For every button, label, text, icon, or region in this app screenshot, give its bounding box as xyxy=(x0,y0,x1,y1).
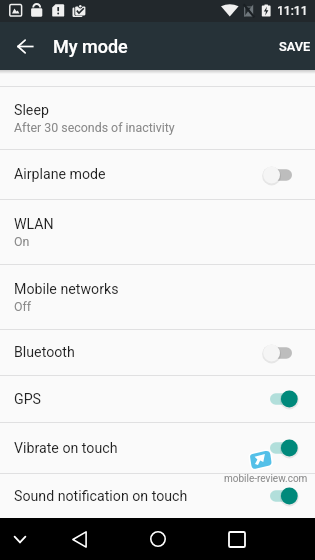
button[interactable]: GPS xyxy=(0,376,315,422)
button[interactable]: Recents xyxy=(223,525,251,553)
button[interactable]: Toggle on xyxy=(261,482,301,510)
button[interactable]: Hide keyboard xyxy=(6,525,34,553)
staticText: Airplane mode xyxy=(14,166,106,183)
button[interactable]: Sound notification on touch xyxy=(0,474,315,518)
staticText: mobile-review.com xyxy=(224,473,308,485)
button[interactable]: Mobile networks xyxy=(0,265,315,329)
button[interactable]: Back xyxy=(5,26,45,66)
button[interactable]: Sleep xyxy=(0,87,315,149)
staticText: My mode xyxy=(53,36,128,57)
button[interactable]: Back xyxy=(65,525,93,553)
button[interactable]: Toggle off xyxy=(261,339,301,367)
button[interactable]: Toggle off xyxy=(261,161,301,189)
staticText: WLAN xyxy=(14,216,54,233)
staticText: Off xyxy=(14,299,32,314)
button[interactable]: Toggle on xyxy=(261,434,301,462)
staticText: SAVE xyxy=(279,39,311,54)
button[interactable]: Bluetooth xyxy=(0,330,315,375)
staticText: Mobile networks xyxy=(14,281,119,298)
button[interactable]: Airplane mode xyxy=(0,150,315,199)
staticText: On xyxy=(14,234,30,249)
button[interactable]: WLAN xyxy=(0,200,315,264)
staticText: 11:11 xyxy=(277,4,308,18)
button[interactable]: Home xyxy=(144,525,172,553)
staticText: Sound notification on touch xyxy=(14,488,188,505)
button[interactable]: Vibrate on touch xyxy=(0,423,315,473)
staticText: Sleep xyxy=(14,102,49,119)
staticText: GPS xyxy=(14,391,42,408)
button[interactable]: Toggle on xyxy=(261,385,301,413)
button[interactable]: SAVE xyxy=(271,29,315,64)
staticText: Vibrate on touch xyxy=(14,440,118,457)
staticText: Bluetooth xyxy=(14,344,75,361)
staticText: After 30 seconds of inactivity xyxy=(14,120,175,135)
